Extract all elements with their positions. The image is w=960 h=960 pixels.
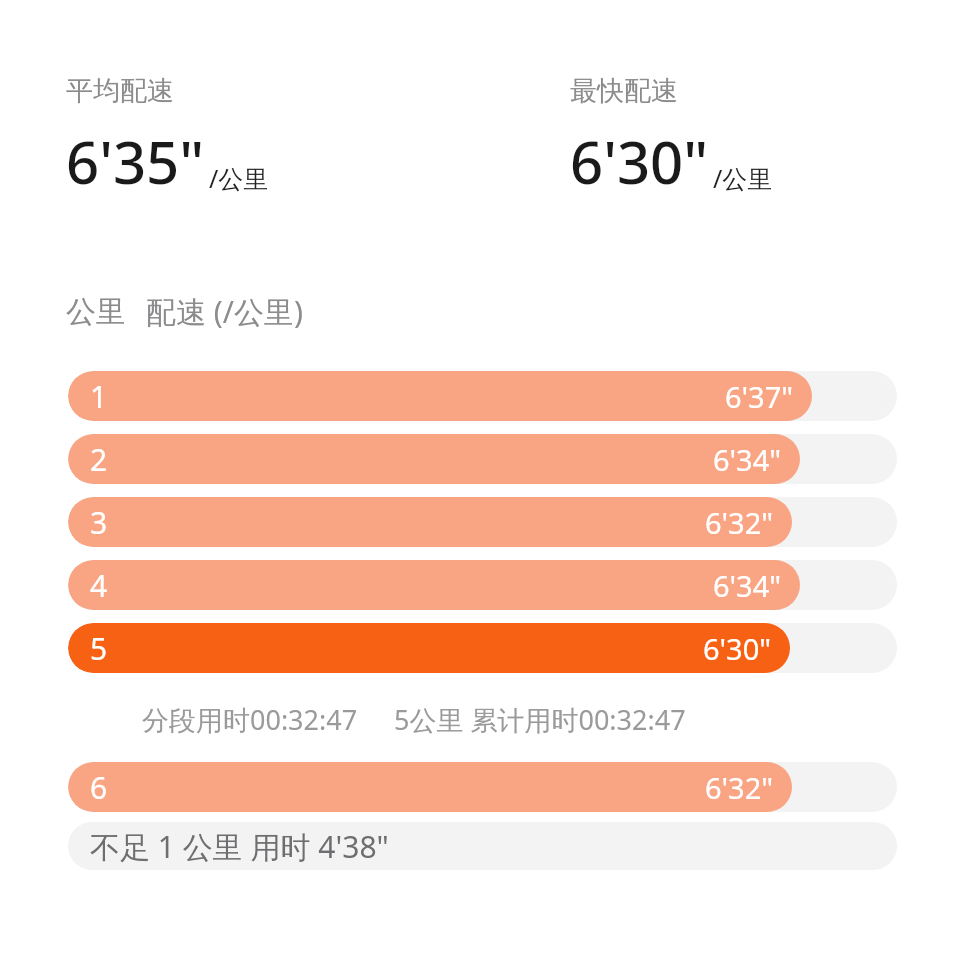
staticText: 6'30" [703, 629, 772, 668]
staticText: 最快配速 [570, 74, 678, 108]
staticText: 4 [90, 565, 108, 606]
staticText: /公里 [209, 161, 269, 195]
button[interactable]: 5 [68, 623, 897, 673]
staticText: 分段用时00:32:47 [142, 701, 358, 738]
staticText: 6'35" [66, 122, 205, 201]
staticText: 6'32" [705, 503, 774, 542]
button[interactable]: 6 [68, 762, 897, 812]
staticText: 5公里 累计用时00:32:47 [394, 701, 686, 738]
staticText: 公里 [66, 293, 126, 331]
staticText: 6'34" [713, 440, 782, 479]
button[interactable]: 2 [68, 434, 897, 484]
staticText: 3 [90, 502, 108, 543]
button[interactable]: 最快配速 [570, 74, 773, 201]
staticText: 6 [90, 767, 108, 808]
staticText: 6'37" [725, 377, 794, 416]
staticText: 配速 (/公里) [146, 291, 303, 332]
button[interactable]: 1 [68, 371, 897, 421]
staticText: 5 [90, 628, 108, 669]
staticText: /公里 [713, 161, 773, 195]
staticText: 6'30" [570, 122, 709, 201]
staticText: 2 [90, 439, 108, 480]
staticText: 1 [90, 376, 108, 417]
staticText: 平均配速 [66, 74, 174, 108]
button[interactable]: 3 [68, 497, 897, 547]
button[interactable]: 不足 1 公里 用时 4'38" [68, 822, 897, 870]
staticText: 不足 1 公里 用时 4'38" [90, 826, 389, 867]
button[interactable]: 4 [68, 560, 897, 610]
staticText: 6'32" [705, 768, 774, 807]
button[interactable]: 平均配速 [66, 74, 269, 201]
staticText: 6'34" [713, 566, 782, 605]
